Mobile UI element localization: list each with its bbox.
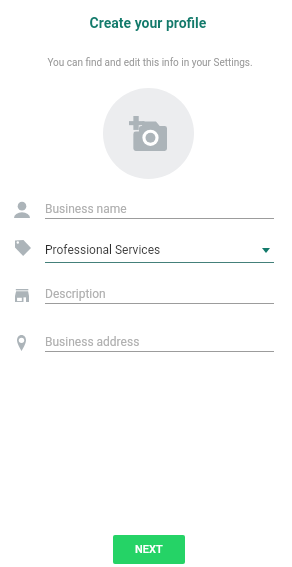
staticText: Professional Services bbox=[45, 243, 161, 257]
button[interactable]: Add profile photo bbox=[103, 88, 194, 179]
button[interactable]: Business address bbox=[10, 327, 274, 355]
staticText: Create your profile bbox=[2, 15, 292, 31]
button[interactable]: Business name bbox=[10, 194, 274, 222]
button[interactable]: Professional Services bbox=[10, 238, 274, 266]
staticText: NEXT bbox=[135, 543, 163, 556]
staticText: Business name bbox=[45, 202, 127, 216]
staticText: Description bbox=[45, 287, 106, 301]
staticText: Business address bbox=[45, 335, 140, 349]
button[interactable]: Description bbox=[10, 279, 274, 307]
button[interactable]: NEXT bbox=[113, 535, 185, 564]
staticText: You can find and edit this info in your … bbox=[4, 57, 292, 69]
button[interactable]: Expand category list bbox=[252, 240, 279, 260]
